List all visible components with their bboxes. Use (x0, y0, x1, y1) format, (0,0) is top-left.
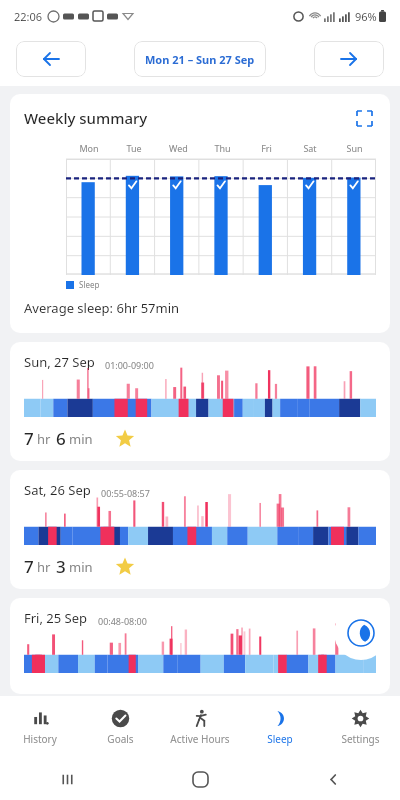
staticText: Tue (126, 142, 142, 154)
staticText: 00:55-08:57 (101, 487, 150, 499)
button[interactable]: Next week (314, 41, 384, 77)
button[interactable]: Active Hours (160, 696, 240, 758)
staticText: 7 (24, 427, 34, 450)
staticText: 6 (56, 427, 66, 450)
staticText: 7 (24, 555, 34, 578)
staticText: Sat, 26 Sep (24, 481, 91, 499)
staticText: 01:00-09:00 (105, 359, 154, 371)
staticText: Settings (341, 732, 380, 746)
staticText: Thu (214, 142, 231, 154)
button[interactable]: Goals (80, 696, 160, 758)
staticText: Sleep (267, 732, 293, 746)
staticText: Active Hours (170, 732, 230, 746)
staticText: Sleep (79, 279, 100, 290)
button[interactable]: Settings (320, 696, 400, 758)
staticText: Sun, 27 Sep (24, 353, 95, 371)
staticText: hr (37, 558, 51, 576)
staticText: History (23, 732, 57, 746)
staticText: 96% (355, 9, 377, 24)
staticText: Sat (303, 142, 317, 154)
staticText: Mon (79, 142, 99, 154)
button[interactable]: Sat, 26 Sep (10, 470, 390, 589)
staticText: 3 (56, 555, 66, 578)
button[interactable]: Fri, 25 Sep (10, 598, 390, 694)
button[interactable]: Sun, 27 Sep (10, 342, 390, 461)
button[interactable]: History (0, 696, 80, 758)
staticText: 00:48-08:00 (98, 615, 147, 627)
staticText: Average sleep: 6hr 57min (24, 299, 180, 317)
staticText: hr (37, 430, 51, 448)
button[interactable]: Sleep (240, 696, 320, 758)
staticText: 22:06 (14, 9, 43, 24)
staticText: Wed (169, 142, 188, 154)
staticText: Sun (346, 142, 363, 154)
button[interactable]: Start sleep tracking (334, 606, 388, 660)
button[interactable]: Mon 21 – Sun 27 Sep (134, 41, 266, 77)
staticText: Fri, 25 Sep (24, 609, 88, 627)
staticText: min (69, 430, 93, 448)
button[interactable]: Expand chart (352, 106, 376, 130)
staticText: min (69, 558, 93, 576)
staticText: Fri (261, 142, 272, 154)
staticText: Mon 21 – Sun 27 Sep (145, 52, 255, 67)
staticText: Goals (107, 732, 134, 746)
button[interactable]: Previous week (16, 41, 86, 77)
staticText: Weekly summary (24, 108, 148, 128)
